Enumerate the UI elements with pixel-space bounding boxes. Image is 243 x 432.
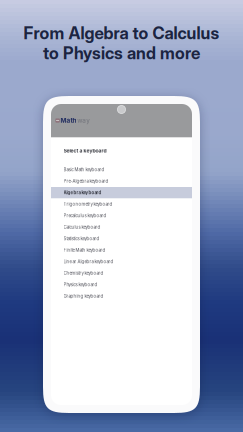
staticText: Precalculus keyboard xyxy=(63,213,106,218)
button[interactable]: Linear Algebra keyboard xyxy=(51,256,192,267)
button[interactable]: Algebra keyboard xyxy=(51,187,192,198)
staticText: Graphing keyboard xyxy=(63,294,103,299)
staticText: Chemistry keyboard xyxy=(63,271,103,276)
staticText: Linear Algebra keyboard xyxy=(63,259,113,264)
staticText: Trigonometry keyboard xyxy=(63,202,112,207)
button[interactable]: Chemistry keyboard xyxy=(51,267,192,279)
button[interactable]: Precalculus keyboard xyxy=(51,210,192,221)
staticText: Algebra keyboard xyxy=(63,190,101,195)
staticText: Finite Math keyboard xyxy=(63,248,105,253)
button[interactable]: Pre-Algebra keyboard xyxy=(51,175,192,187)
staticText: Statistics keyboard xyxy=(63,236,99,241)
button[interactable]: Finite Math keyboard xyxy=(51,244,192,256)
staticText: Select a keyboard xyxy=(63,148,106,154)
staticText: Basic Math keyboard xyxy=(63,167,104,172)
button[interactable]: Statistics keyboard xyxy=(51,233,192,244)
staticText: to Physics and more xyxy=(43,43,200,63)
button[interactable]: Basic Math keyboard xyxy=(51,164,192,175)
button[interactable]: Graphing keyboard xyxy=(51,290,192,302)
staticText: Pre-Algebra keyboard xyxy=(63,179,108,184)
staticText: Calculus keyboard xyxy=(63,225,100,230)
staticText: From Algebra to Calculus xyxy=(23,23,219,43)
button[interactable]: Physics keyboard xyxy=(51,279,192,290)
staticText: Math xyxy=(60,117,76,124)
button[interactable]: Trigonometry keyboard xyxy=(51,198,192,210)
button[interactable]: Calculus keyboard xyxy=(51,221,192,233)
staticText: way xyxy=(77,117,90,124)
staticText: Physics keyboard xyxy=(63,282,97,287)
